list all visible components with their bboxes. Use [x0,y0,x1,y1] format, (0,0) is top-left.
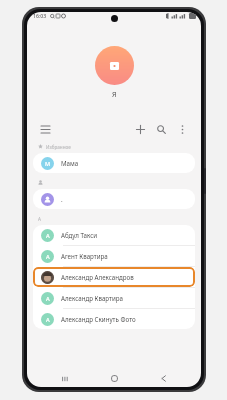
staticText: A [46,232,50,240]
button[interactable]: A [33,246,195,266]
button[interactable]: Search [153,121,170,138]
button[interactable]: . [33,189,195,209]
staticText: Александр Скинуть Фото [61,315,136,323]
button[interactable]: Home [103,370,125,387]
button[interactable]: More options [174,121,191,138]
staticText: Я [112,90,117,100]
staticText: M [45,160,51,168]
staticText: A [46,316,50,324]
button[interactable]: Back [152,370,174,387]
button[interactable]: A [33,309,195,329]
staticText: 16:03 [33,12,47,19]
button[interactable]: Recents [54,370,76,387]
button[interactable]: Menu [37,121,53,137]
staticText: Агент Квартира [61,252,108,260]
button[interactable]: Александр Александров [33,267,195,287]
staticText: A [38,216,41,222]
button[interactable]: Add contact [132,121,149,138]
staticText: Абдул Такси [61,231,98,239]
button[interactable]: M [33,153,195,173]
staticText: Мама [61,159,79,167]
staticText: Александр Александров [61,273,134,281]
button[interactable]: A [33,288,195,308]
staticText: . [61,195,63,203]
button[interactable]: Profile photo [95,46,134,85]
staticText: A [46,253,50,261]
button[interactable]: A [33,225,195,245]
staticText: Избранное [46,144,71,150]
staticText: A [46,295,50,303]
staticText: Александр Квартира [61,294,123,302]
